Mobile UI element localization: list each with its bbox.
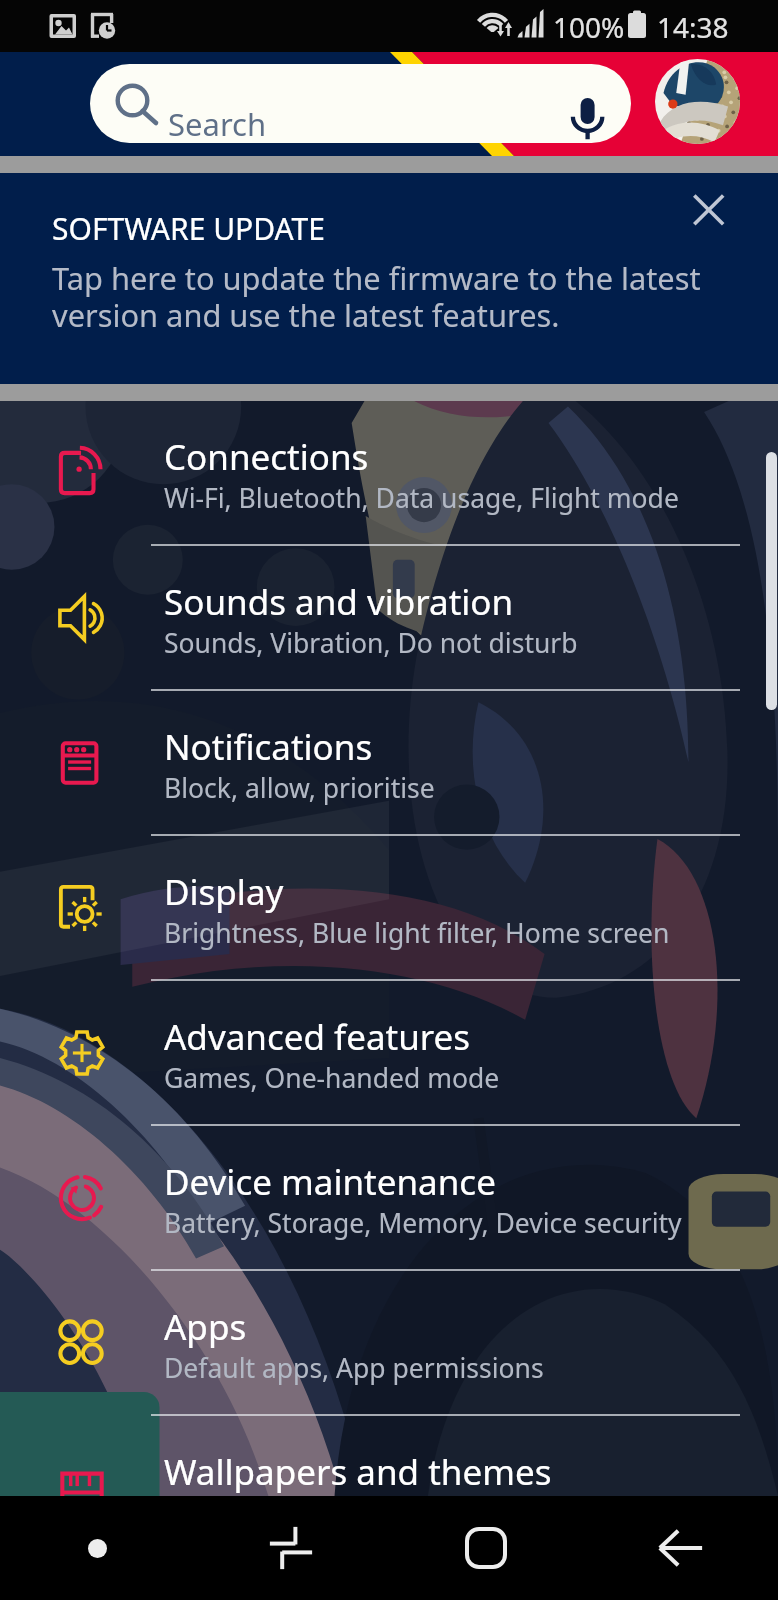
button[interactable]: Wallpapers and themes bbox=[0, 1416, 778, 1496]
button[interactable]: Connections bbox=[0, 401, 778, 546]
button[interactable]: Device maintenance bbox=[0, 1126, 778, 1271]
button[interactable]: Recent apps bbox=[194, 1496, 388, 1600]
staticText: Wi-Fi, Bluetooth, Data usage, Flight mod… bbox=[164, 480, 679, 516]
button[interactable]: Apps bbox=[0, 1271, 778, 1416]
button[interactable]: Search bbox=[90, 64, 631, 143]
staticText: Battery, Storage, Memory, Device securit… bbox=[164, 1205, 682, 1241]
staticText: 14:38 bbox=[657, 8, 729, 46]
staticText: Brightness, Blue light filter, Home scre… bbox=[164, 915, 670, 951]
button[interactable]: Notifications bbox=[0, 691, 778, 836]
button[interactable]: Display bbox=[0, 836, 778, 981]
button[interactable]: Home bbox=[388, 1496, 583, 1600]
staticText: Display bbox=[164, 868, 284, 916]
staticText: Sounds and vibration bbox=[164, 578, 514, 626]
staticText: Connections bbox=[164, 433, 369, 481]
staticText: Block, allow, prioritise bbox=[164, 770, 435, 806]
staticText: Apps bbox=[164, 1303, 247, 1351]
staticText: 100% bbox=[553, 8, 625, 46]
button[interactable]: Advanced features bbox=[0, 981, 778, 1126]
button[interactable]: Sounds and vibration bbox=[0, 546, 778, 691]
staticText: Device maintenance bbox=[164, 1158, 496, 1206]
staticText: Games, One-handed mode bbox=[164, 1060, 500, 1096]
button[interactable]: SOFTWARE UPDATE bbox=[0, 173, 778, 384]
staticText: Wallpapers and themes bbox=[164, 1448, 552, 1496]
button[interactable]: Back bbox=[583, 1496, 778, 1600]
staticText: Advanced features bbox=[164, 1013, 471, 1061]
staticText: SOFTWARE UPDATE bbox=[52, 208, 325, 249]
staticText: Sounds, Vibration, Do not disturb bbox=[164, 625, 578, 661]
button[interactable]: Voice search bbox=[563, 88, 613, 138]
staticText: Notifications bbox=[164, 723, 373, 771]
button[interactable]: Menu bbox=[0, 1496, 194, 1600]
staticText: Search bbox=[168, 103, 267, 143]
button[interactable]: Profile picture bbox=[655, 59, 740, 144]
staticText: Tap here to update the firmware to the l… bbox=[52, 257, 701, 336]
staticText: Default apps, App permissions bbox=[164, 1350, 544, 1386]
button[interactable]: Dismiss software update bbox=[685, 186, 733, 234]
